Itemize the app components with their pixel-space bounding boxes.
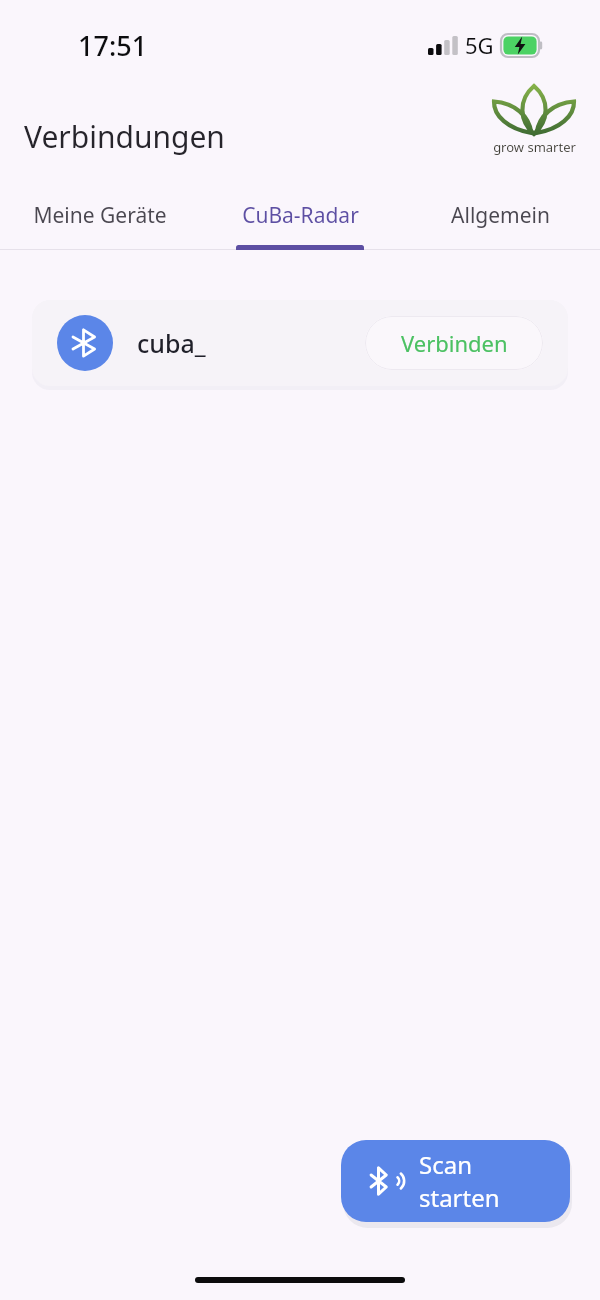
staticText: cuba_ xyxy=(137,326,206,360)
staticText: grow smarter xyxy=(493,138,576,156)
button[interactable]: Verbinden xyxy=(365,316,543,370)
staticText: Scan starten xyxy=(419,1148,548,1214)
staticText: 5G xyxy=(465,30,494,60)
staticText: Verbinden xyxy=(401,328,508,358)
staticText: Allgemein xyxy=(451,201,550,230)
button[interactable]: Meine Geräte xyxy=(0,185,200,245)
button[interactable]: Scan starten xyxy=(341,1140,570,1222)
button[interactable]: Allgemein xyxy=(400,185,600,245)
staticText: Verbindungen xyxy=(24,116,225,157)
staticText: Meine Geräte xyxy=(33,201,167,230)
staticText: CuBa-Radar xyxy=(242,201,359,230)
button[interactable]: cuba_ xyxy=(32,300,568,386)
staticText: 17:51 xyxy=(78,27,148,64)
button[interactable]: CuBa-Radar xyxy=(200,185,400,245)
